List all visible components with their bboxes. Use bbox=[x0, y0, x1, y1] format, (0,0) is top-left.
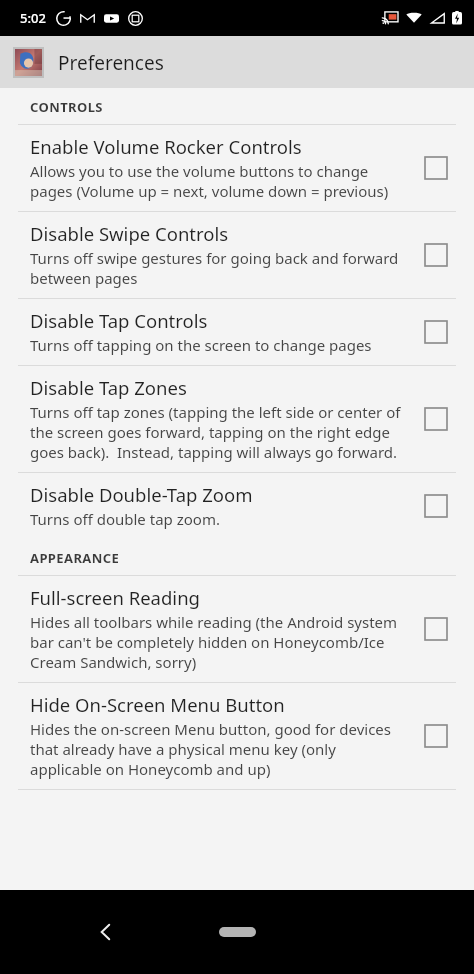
button[interactable]: Home bbox=[197, 914, 277, 950]
staticText: Turns off tapping on the screen to chang… bbox=[30, 335, 372, 355]
staticText: Disable Tap Zones bbox=[30, 375, 187, 400]
staticText: Disable Swipe Controls bbox=[30, 221, 229, 246]
button[interactable]: Back bbox=[84, 910, 128, 954]
button[interactable]: Full-screen Reading bbox=[0, 576, 474, 682]
button[interactable]: Hide On-Screen Menu Button bbox=[416, 716, 456, 756]
button[interactable]: Disable Double-Tap Zoom bbox=[0, 473, 474, 539]
button[interactable]: Disable Tap Controls bbox=[0, 299, 474, 365]
staticText: Disable Double-Tap Zoom bbox=[30, 482, 253, 507]
staticText: Hide On-Screen Menu Button bbox=[30, 692, 285, 717]
staticText: Preferences bbox=[58, 50, 164, 76]
button[interactable]: Enable Volume Rocker Controls bbox=[0, 125, 474, 211]
button[interactable]: Full-screen Reading bbox=[416, 609, 456, 649]
staticText: Disable Tap Controls bbox=[30, 308, 208, 333]
button[interactable]: Enable Volume Rocker Controls bbox=[416, 148, 456, 188]
button[interactable]: Disable Double-Tap Zoom bbox=[416, 486, 456, 526]
staticText: Allows you to use the volume buttons to … bbox=[30, 161, 402, 201]
staticText: Turns off tap zones (tapping the left si… bbox=[30, 402, 402, 462]
button[interactable]: Disable Tap Zones bbox=[416, 399, 456, 439]
staticText: Turns off double tap zoom. bbox=[30, 509, 220, 529]
staticText: Hides the on-screen Menu button, good fo… bbox=[30, 719, 402, 779]
button[interactable]: Hide On-Screen Menu Button bbox=[0, 683, 474, 789]
staticText: Turns off swipe gestures for going back … bbox=[30, 248, 402, 288]
staticText: Full-screen Reading bbox=[30, 585, 200, 610]
staticText: APPEARANCE bbox=[30, 549, 120, 567]
staticText: CONTROLS bbox=[30, 98, 103, 116]
button[interactable]: Disable Swipe Controls bbox=[0, 212, 474, 298]
staticText: 5:02 bbox=[20, 9, 46, 27]
staticText: Enable Volume Rocker Controls bbox=[30, 134, 302, 159]
button[interactable]: Disable Tap Controls bbox=[416, 312, 456, 352]
button[interactable]: Disable Tap Zones bbox=[0, 366, 474, 472]
button[interactable]: Disable Swipe Controls bbox=[416, 235, 456, 275]
staticText: Hides all toolbars while reading (the An… bbox=[30, 612, 402, 672]
